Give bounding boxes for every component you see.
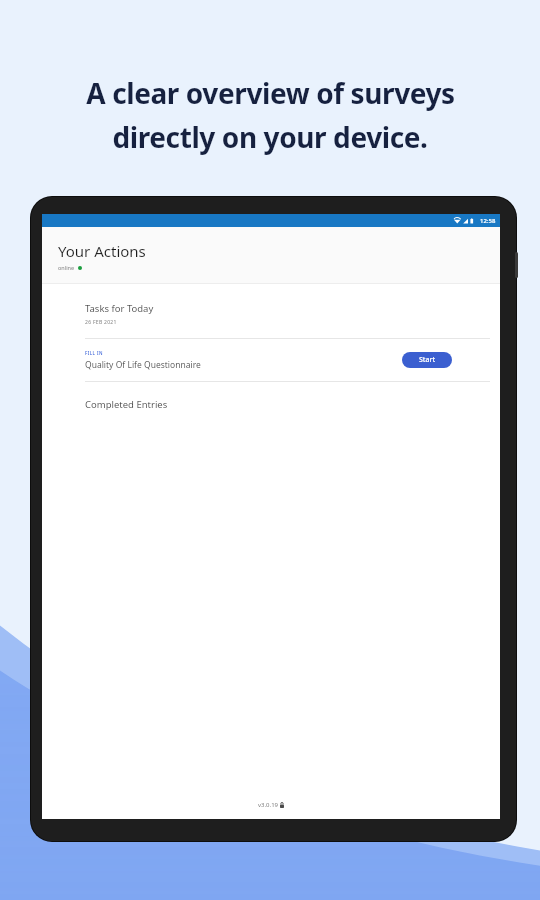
staticText: online	[58, 264, 75, 271]
staticText: v3.0.19	[258, 801, 278, 809]
staticText: Start	[419, 355, 436, 365]
staticText: 12:58	[480, 217, 496, 225]
button[interactable]: FILL IN	[42, 339, 500, 381]
staticText: directly on your device.	[112, 118, 428, 156]
staticText: Your Actions	[58, 241, 146, 261]
button[interactable]: Completed Entries	[42, 396, 500, 413]
staticText: A clear overview of surveys	[86, 74, 455, 112]
staticText: 26 FEB 2021	[85, 319, 117, 326]
staticText: Completed Entries	[85, 398, 168, 411]
button[interactable]: Start	[402, 352, 452, 368]
staticText: Tasks for Today	[85, 302, 154, 315]
staticText: FILL IN	[85, 350, 103, 356]
staticText: Quality Of Life Questionnaire	[85, 359, 201, 371]
